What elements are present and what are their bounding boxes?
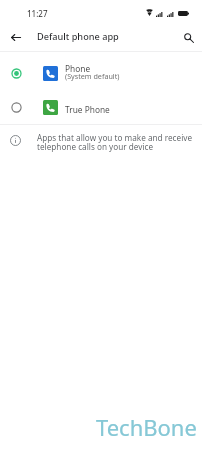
staticText: Default phone app xyxy=(37,30,119,43)
staticText: TechBone xyxy=(96,412,197,442)
staticText: Phone xyxy=(65,63,91,74)
staticText: 11:27 xyxy=(27,8,48,19)
button[interactable]: True Phone xyxy=(0,90,202,124)
staticText: True Phone xyxy=(65,104,110,115)
staticText: Apps that allow you to make and receive … xyxy=(37,132,196,153)
button[interactable]: Back xyxy=(3,25,28,50)
staticText: (System default) xyxy=(65,71,120,81)
button[interactable]: Phone xyxy=(0,56,202,90)
button[interactable]: Search xyxy=(176,25,201,50)
